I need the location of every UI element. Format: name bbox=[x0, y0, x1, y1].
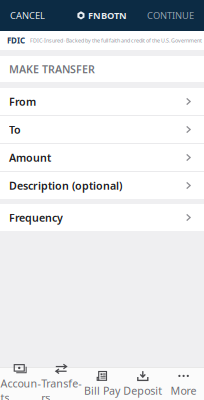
staticText: Accounts bbox=[0, 376, 40, 400]
staticText: MAKE TRANSFER bbox=[9, 62, 95, 76]
button[interactable]: Bill Pay bbox=[82, 368, 122, 399]
staticText: FDIC-Insured · Backed by the full faith … bbox=[30, 37, 202, 44]
button[interactable]: Frequency bbox=[0, 204, 204, 231]
button[interactable]: To bbox=[0, 116, 204, 143]
button[interactable]: CONTINUE bbox=[145, 1, 196, 30]
staticText: Amount bbox=[9, 150, 51, 165]
staticText: To bbox=[9, 122, 21, 137]
staticText: From bbox=[9, 94, 36, 109]
button[interactable]: Amount bbox=[0, 144, 204, 171]
staticText: Bill Pay bbox=[84, 383, 120, 398]
staticText: CANCEL bbox=[10, 9, 45, 22]
staticText: Transfers bbox=[41, 376, 81, 400]
staticText: Deposit bbox=[123, 383, 162, 398]
button[interactable]: CANCEL bbox=[8, 1, 47, 30]
staticText: FNBOTN bbox=[88, 9, 127, 22]
staticText: More bbox=[171, 383, 197, 398]
staticText: CONTINUE bbox=[147, 9, 194, 22]
button[interactable]: Accounts bbox=[0, 368, 41, 399]
button[interactable]: Description (optional) bbox=[0, 172, 204, 199]
staticText: Description (optional) bbox=[9, 178, 122, 193]
button[interactable]: Transfers bbox=[41, 368, 82, 399]
staticText: FDIC bbox=[7, 35, 25, 46]
button[interactable]: From bbox=[0, 88, 204, 115]
button[interactable]: Deposit bbox=[122, 368, 163, 399]
button[interactable]: More bbox=[163, 368, 204, 399]
staticText: Frequency bbox=[9, 210, 63, 225]
